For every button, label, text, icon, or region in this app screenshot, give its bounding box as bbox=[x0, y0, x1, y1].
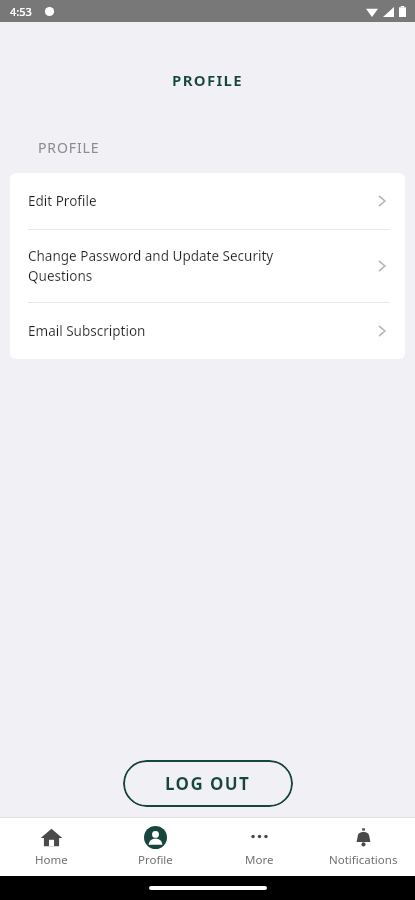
staticText: Change Password and Update Security Ques… bbox=[28, 247, 373, 285]
staticText: Email Subscription bbox=[28, 322, 373, 340]
staticText: More bbox=[245, 852, 274, 868]
staticText: Notifications bbox=[329, 852, 398, 868]
staticText: LOG OUT bbox=[165, 772, 251, 795]
button[interactable]: Change Password and Update Security Ques… bbox=[10, 230, 405, 302]
staticText: PROFILE bbox=[38, 138, 100, 157]
button[interactable]: Email Subscription bbox=[10, 303, 405, 359]
button[interactable]: LOG OUT bbox=[123, 760, 293, 807]
staticText: Edit Profile bbox=[28, 192, 373, 210]
button[interactable]: Home bbox=[0, 818, 103, 876]
button[interactable]: Notifications bbox=[311, 818, 415, 876]
button[interactable]: Profile bbox=[103, 818, 207, 876]
button[interactable]: More bbox=[207, 818, 311, 876]
staticText: Home bbox=[35, 852, 68, 868]
staticText: Profile bbox=[138, 852, 173, 868]
button[interactable]: Edit Profile bbox=[10, 173, 405, 229]
staticText: PROFILE bbox=[0, 70, 415, 90]
staticText: 4:53 bbox=[10, 4, 32, 19]
